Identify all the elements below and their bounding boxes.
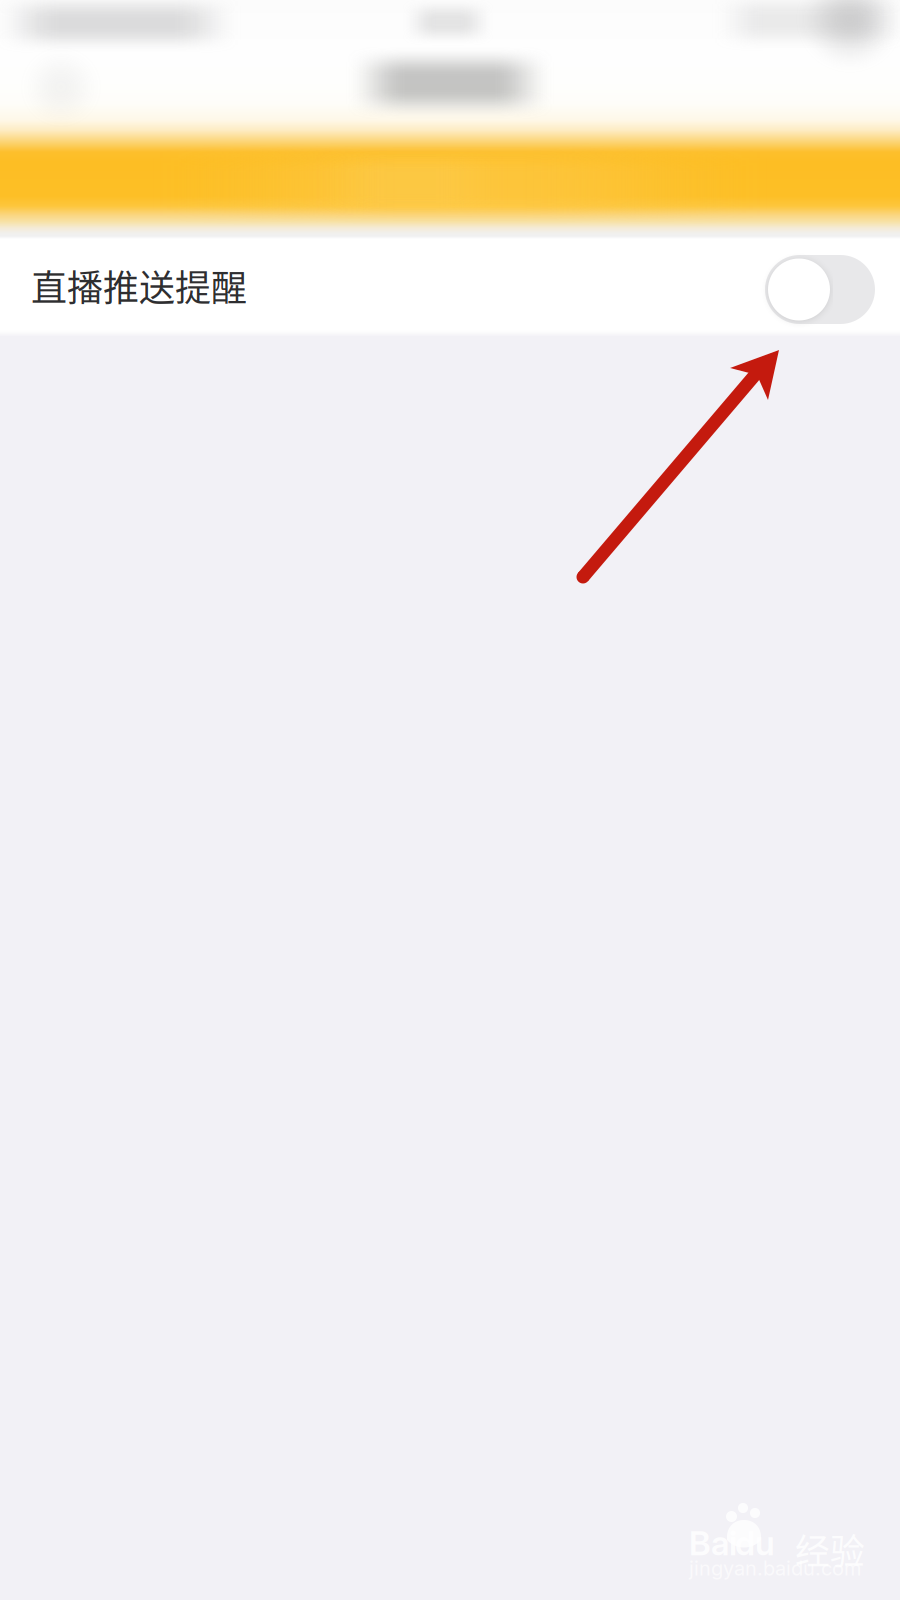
- staticText: du: [735, 1523, 775, 1563]
- staticText: jingyan.baidu.com: [689, 1556, 861, 1580]
- staticText: 直播推送提醒: [31, 259, 247, 311]
- staticText: Bai: [689, 1523, 737, 1563]
- button[interactable]: 直播推送提醒: [0, 239, 900, 336]
- staticText: 经验: [795, 1524, 865, 1574]
- button[interactable]: Back: [18, 44, 104, 130]
